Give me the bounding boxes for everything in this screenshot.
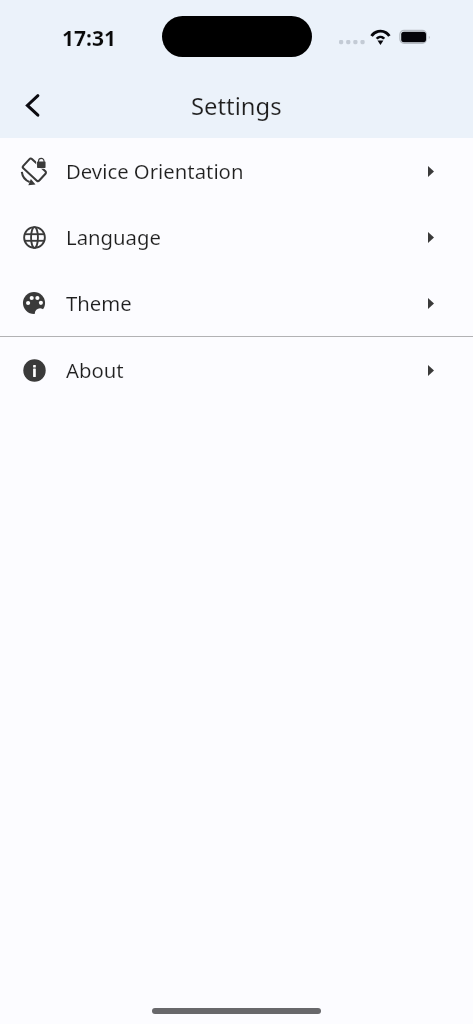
staticText: Theme <box>66 289 132 317</box>
button[interactable]: Back <box>8 78 54 130</box>
staticText: About <box>66 356 124 384</box>
button[interactable]: Theme <box>0 270 473 336</box>
staticText: Language <box>66 223 161 251</box>
button[interactable]: Language <box>0 204 473 270</box>
button[interactable]: Device Orientation <box>0 138 473 204</box>
staticText: Settings <box>191 90 282 122</box>
staticText: Device Orientation <box>66 157 244 185</box>
button[interactable]: About <box>0 337 473 403</box>
staticText: 17:31 <box>62 24 116 53</box>
